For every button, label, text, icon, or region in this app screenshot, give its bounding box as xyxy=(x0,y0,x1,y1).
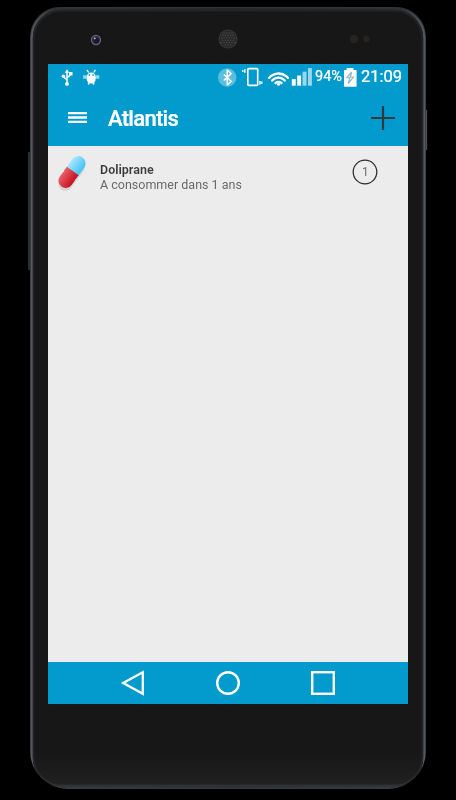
staticText: Atlantis xyxy=(108,106,179,132)
button[interactable]: 1 xyxy=(352,159,378,185)
staticText: 94% xyxy=(315,68,342,85)
button[interactable]: Open navigation drawer xyxy=(55,95,99,139)
staticText: 1 xyxy=(362,165,369,179)
button[interactable]: Recent apps xyxy=(300,662,346,704)
button[interactable]: Doliprane xyxy=(48,146,408,199)
button[interactable]: Back xyxy=(110,662,156,704)
staticText: 21:09 xyxy=(361,67,403,86)
staticText: Doliprane xyxy=(100,162,154,177)
button[interactable]: Add xyxy=(360,95,406,141)
button[interactable]: Home xyxy=(205,662,251,704)
staticText: A consommer dans 1 ans xyxy=(100,177,242,192)
